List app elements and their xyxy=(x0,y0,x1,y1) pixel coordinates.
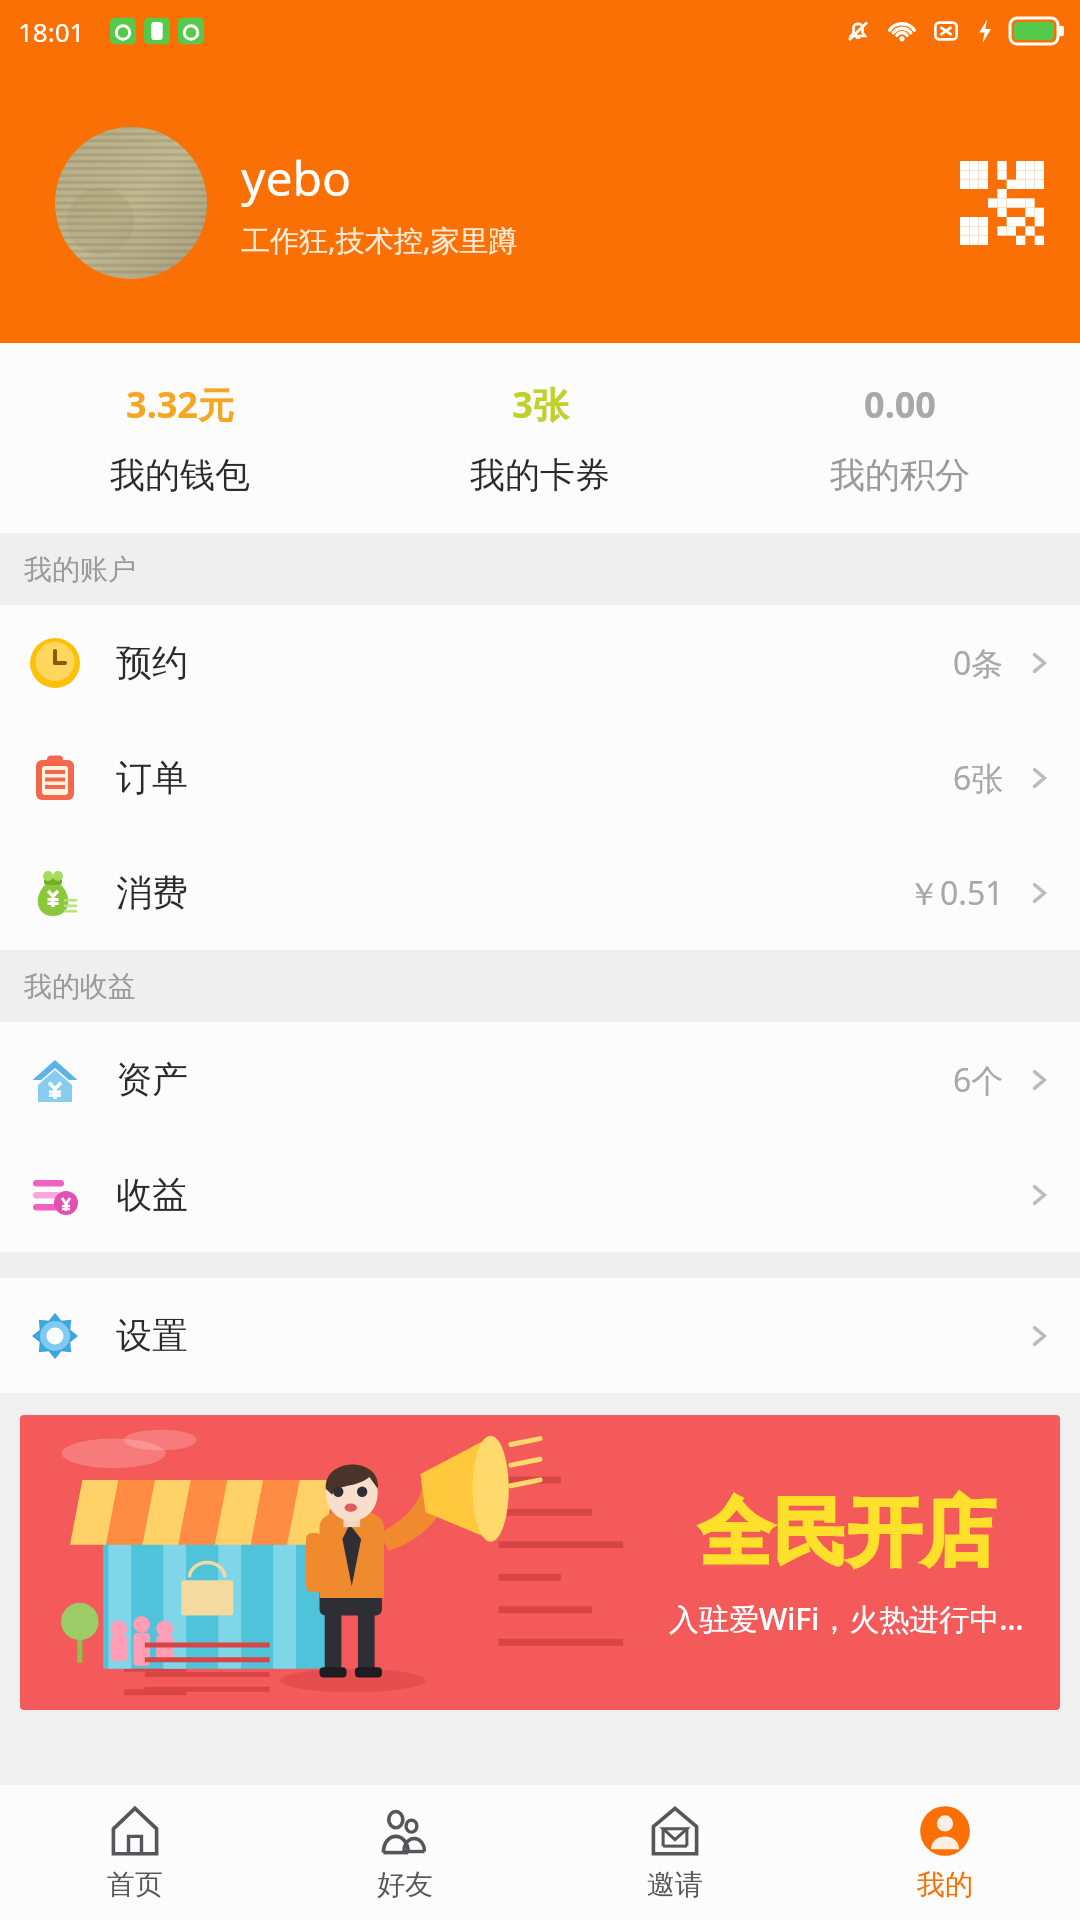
staticText: 入驻爱WiFi，火热进行中… xyxy=(669,1598,1024,1639)
staticText: 邀请 xyxy=(647,1867,703,1902)
staticText: 设置 xyxy=(116,1313,1024,1358)
staticText: 订单 xyxy=(116,755,953,800)
button[interactable]: 好友 xyxy=(270,1785,540,1920)
staticText: 0.00 xyxy=(864,380,936,429)
button[interactable]: Avatar xyxy=(55,127,207,279)
staticText: 消费 xyxy=(116,870,908,915)
staticText: 首页 xyxy=(107,1867,163,1902)
staticText: ￥0.51 xyxy=(908,871,1004,915)
staticText: 全民开店 xyxy=(699,1487,995,1580)
button[interactable]: 设置 xyxy=(0,1278,1080,1393)
staticText: 18:01 xyxy=(18,14,85,49)
button[interactable]: 我的 xyxy=(810,1785,1080,1920)
button[interactable]: 消费 xyxy=(0,835,1080,950)
staticText: 我的钱包 xyxy=(110,453,250,497)
staticText: 我的收益 xyxy=(24,969,136,1004)
staticText: 0条 xyxy=(953,641,1004,685)
button[interactable]: 预约 xyxy=(0,605,1080,720)
staticText: 我的卡券 xyxy=(470,453,610,497)
staticText: 我的账户 xyxy=(24,552,136,587)
staticText: 好友 xyxy=(377,1867,433,1902)
staticText: 6张 xyxy=(953,756,1004,800)
button[interactable]: 收益 xyxy=(0,1137,1080,1252)
staticText: 3张 xyxy=(512,380,569,429)
button[interactable]: 资产 xyxy=(0,1022,1080,1137)
button[interactable]: 3.32元 xyxy=(0,343,360,533)
staticText: 我的积分 xyxy=(830,453,970,497)
staticText: 资产 xyxy=(116,1057,953,1102)
staticText: yebo xyxy=(241,145,352,210)
button[interactable]: 3张 xyxy=(360,343,720,533)
button[interactable]: QR code xyxy=(954,155,1050,251)
staticText: 工作狂,技术控,家里蹲 xyxy=(241,220,518,260)
button[interactable]: 邀请 xyxy=(540,1785,810,1920)
staticText: 我的 xyxy=(917,1867,973,1902)
button[interactable]: 首页 xyxy=(0,1785,270,1920)
staticText: 预约 xyxy=(116,640,953,685)
staticText: 收益 xyxy=(116,1172,1024,1217)
button[interactable]: 全民开店 promotion banner xyxy=(20,1415,1060,1710)
button[interactable]: 0.00 xyxy=(720,343,1080,533)
staticText: 6个 xyxy=(953,1058,1004,1102)
button[interactable]: 订单 xyxy=(0,720,1080,835)
staticText: 3.32元 xyxy=(126,380,234,429)
